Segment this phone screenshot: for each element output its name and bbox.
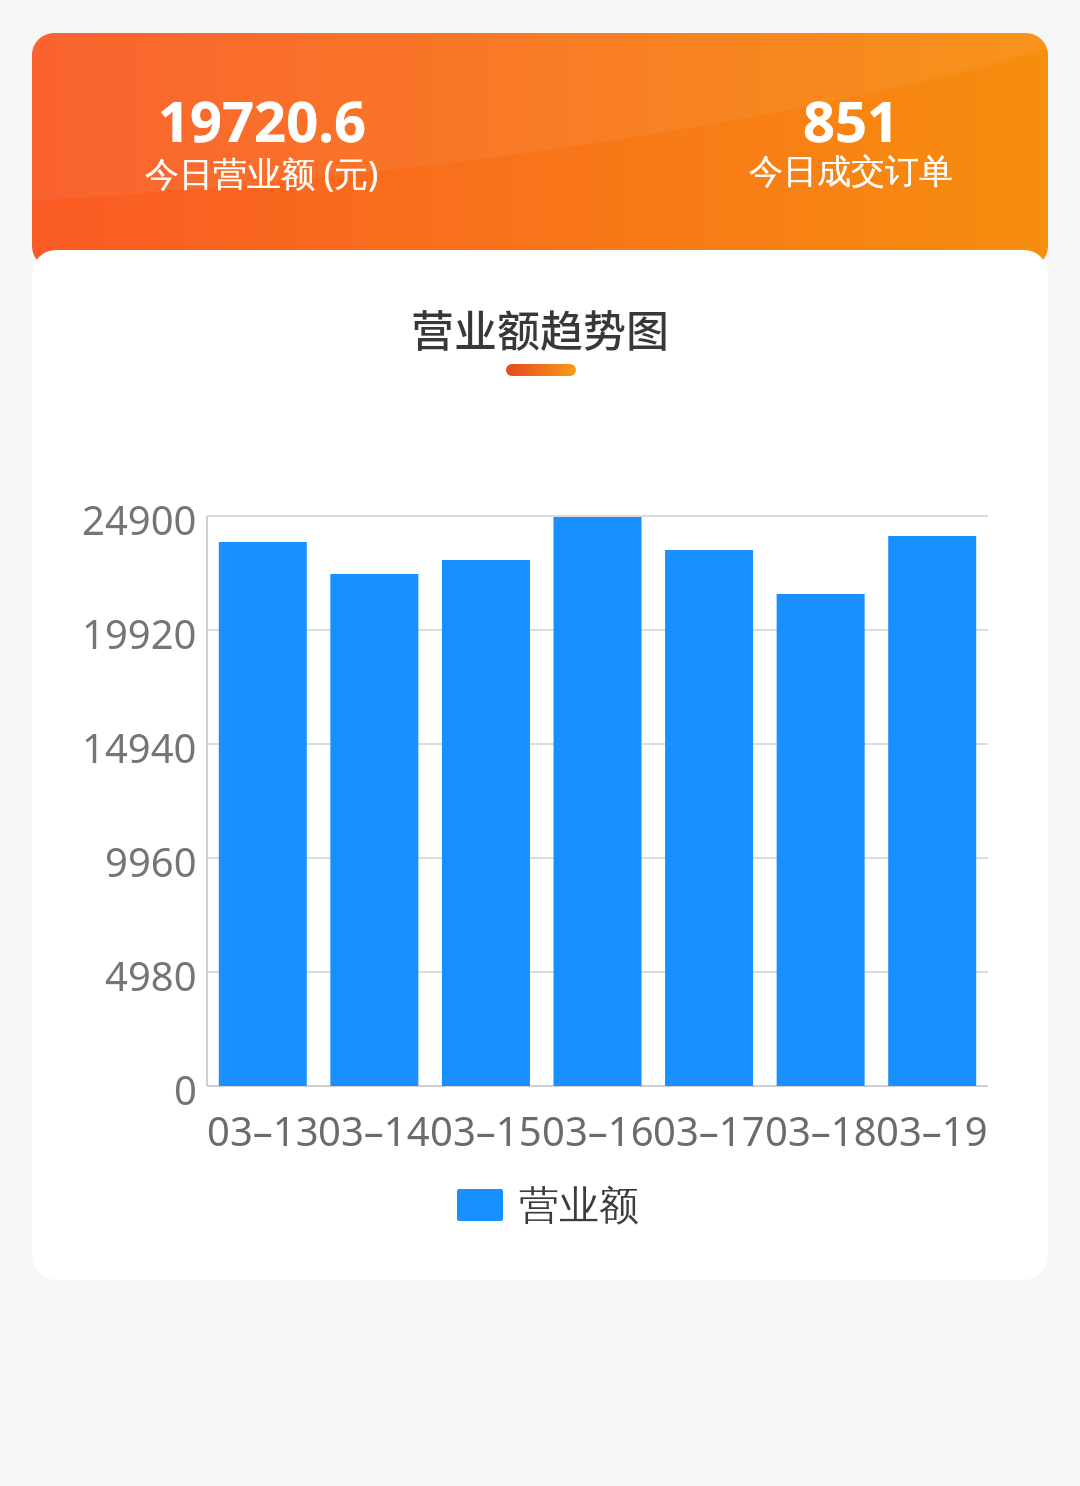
staticText: 今日营业额 (元) xyxy=(145,150,379,196)
staticText: 03–13 xyxy=(207,1103,319,1155)
staticText: 24900 xyxy=(82,492,197,540)
staticText: 03–14 xyxy=(318,1103,430,1155)
staticText: 14940 xyxy=(82,720,197,768)
staticText: 今日成交订单 xyxy=(749,150,953,193)
button[interactable]: 营业额 xyxy=(457,1175,639,1235)
staticText: 03–15 xyxy=(430,1103,542,1155)
staticText: 03–19 xyxy=(876,1103,988,1155)
staticText: 9960 xyxy=(105,834,197,882)
staticText: 4980 xyxy=(105,948,197,996)
staticText: 营业额趋势图 xyxy=(411,297,669,353)
button[interactable]: 19720.6 xyxy=(32,33,1048,268)
staticText: 19720.6 xyxy=(158,82,366,158)
staticText: 19920 xyxy=(82,606,197,654)
staticText: 03–17 xyxy=(653,1103,765,1155)
staticText: 营业额 xyxy=(519,1180,639,1230)
staticText: 03–16 xyxy=(542,1103,654,1155)
staticText: 851 xyxy=(803,82,900,158)
staticText: 0 xyxy=(174,1062,197,1110)
staticText: 03–18 xyxy=(765,1103,877,1155)
